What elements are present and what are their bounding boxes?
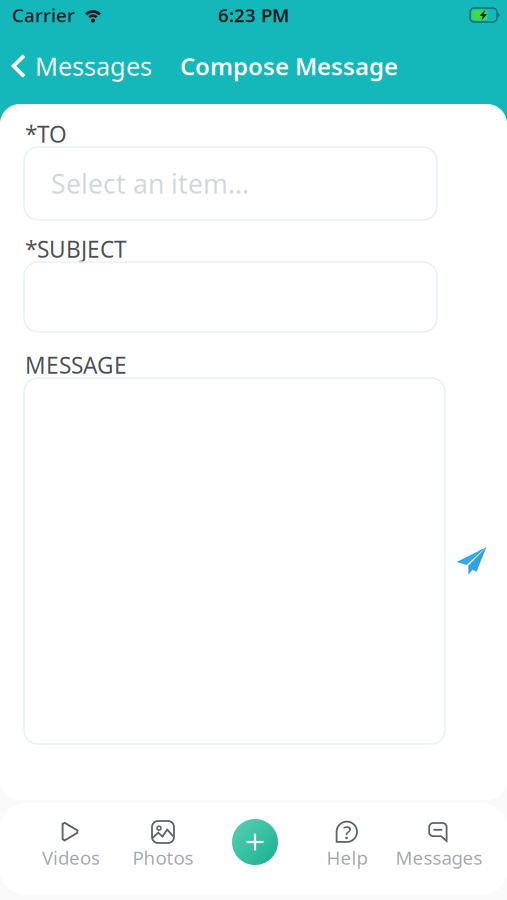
staticText: 6:23 PM (218, 3, 289, 27)
button[interactable]: Videos (25, 819, 117, 881)
staticText: Messages (35, 49, 152, 83)
staticText: Photos (132, 845, 193, 870)
staticText: Select an item… (51, 166, 249, 201)
staticText: *SUBJECT (25, 234, 127, 264)
staticText: Videos (42, 845, 100, 870)
button[interactable]: Send (445, 534, 499, 588)
button[interactable]: New message (209, 819, 301, 881)
button[interactable]: Photos (117, 819, 209, 881)
staticText: ? (343, 820, 351, 844)
button[interactable]: Messages (393, 819, 485, 881)
staticText: Carrier (12, 3, 75, 27)
button[interactable]: ? (301, 819, 393, 881)
staticText: MESSAGE (25, 350, 127, 380)
staticText: Help (326, 845, 367, 870)
staticText: Messages (395, 845, 482, 870)
button[interactable]: Messages (0, 40, 160, 92)
button[interactable] (0, 262, 437, 332)
staticText: *TO (25, 119, 67, 149)
button[interactable]: Select an item… (0, 147, 437, 220)
staticText: Compose Message (180, 50, 398, 82)
